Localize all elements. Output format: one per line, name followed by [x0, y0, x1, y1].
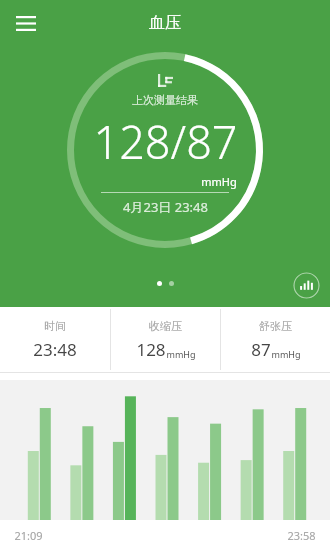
- staticText: 上次测量结果: [132, 93, 198, 107]
- staticText: 23:48: [33, 338, 77, 361]
- staticText: 21:09: [14, 528, 43, 543]
- staticText: 血压: [149, 13, 181, 33]
- staticText: 时间: [44, 319, 66, 333]
- staticText: 4月23日 23:48: [123, 198, 208, 216]
- button[interactable]: Chart: [293, 272, 320, 299]
- button[interactable]: Menu: [8, 5, 44, 41]
- button[interactable]: 舒张压: [221, 307, 330, 372]
- staticText: 128: [136, 338, 166, 361]
- staticText: 87: [251, 338, 271, 361]
- staticText: 128/87: [93, 111, 238, 172]
- button[interactable]: 时间: [0, 307, 110, 372]
- staticText: mmHg: [201, 174, 237, 189]
- staticText: mmHg: [271, 348, 301, 360]
- staticText: mmHg: [166, 348, 196, 360]
- staticText: 舒张压: [259, 319, 292, 333]
- staticText: 23:58: [287, 528, 316, 543]
- staticText: 收缩压: [149, 319, 182, 333]
- button[interactable]: 收缩压: [111, 307, 220, 372]
